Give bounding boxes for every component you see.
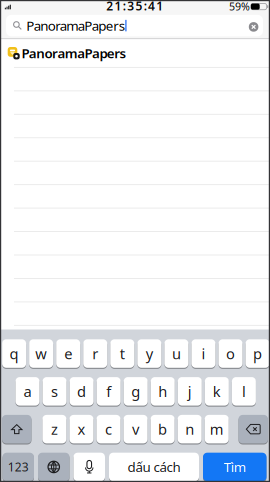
button[interactable]: Tìm [203,453,266,482]
button[interactable]: s [42,377,66,407]
staticText: b [158,419,167,439]
button[interactable]: a [15,377,39,407]
staticText: a [23,382,31,401]
staticText: 2 [106,0,113,14]
staticText: z [51,419,58,439]
staticText: n [185,419,194,439]
staticText: 4 [148,0,155,14]
staticText: p [253,344,262,363]
staticText: : [123,0,126,14]
staticText: t [120,344,125,363]
button[interactable]: f [97,377,121,407]
button[interactable]: b [151,415,175,444]
button[interactable]: h [151,377,175,407]
button[interactable]: 123 [2,453,34,482]
staticText: l [242,382,246,401]
button[interactable]: w [29,339,53,369]
button[interactable]: Clear text [249,22,258,32]
button[interactable]: e [56,339,80,369]
button[interactable]: Shift [2,415,31,444]
staticText: v [132,419,139,439]
staticText: 1 [156,0,163,14]
button[interactable]: u [164,339,188,369]
staticText: e [64,344,72,363]
staticText: o [226,344,235,363]
button[interactable]: i [191,339,215,369]
staticText: x [77,419,85,439]
staticText: g [131,382,140,401]
staticText: 5 [135,0,142,14]
staticText: PanoramaPapers [26,17,125,34]
staticText: c [105,419,112,439]
staticText: 123 [8,459,29,475]
button[interactable]: z [42,415,66,444]
staticText: i [201,344,205,363]
staticText: m [210,419,224,439]
button[interactable]: o [218,339,242,369]
button[interactable]: l [232,377,256,407]
button[interactable]: n [178,415,202,444]
button[interactable]: m [205,415,229,444]
button[interactable]: j [178,377,202,407]
button[interactable]: d [70,377,94,407]
button[interactable]: PanoramaPapers [0,39,270,67]
button[interactable]: PanoramaPapers [6,15,263,36]
staticText: d [77,382,86,401]
button[interactable]: t [110,339,134,369]
button[interactable]: Next keyboard [38,453,69,482]
button[interactable]: x [69,415,93,444]
staticText: 59% [229,0,250,13]
staticText: y [146,344,153,363]
button[interactable]: y [137,339,161,369]
staticText: : [144,0,147,14]
staticText: w [35,344,47,363]
staticText: s [51,382,58,401]
button[interactable]: q [2,339,26,369]
staticText: j [188,382,192,401]
button[interactable]: r [83,339,107,369]
staticText: 3 [127,0,134,14]
staticText: q [10,344,19,363]
staticText: r [92,344,98,363]
staticText: PanoramaPapers [21,44,127,62]
button[interactable]: Dictation [73,453,105,482]
staticText: h [158,382,167,401]
staticText: k [213,382,221,401]
button[interactable]: g [124,377,148,407]
button[interactable]: p [246,339,270,369]
button[interactable]: Delete [238,415,268,444]
button[interactable]: c [96,415,120,444]
button[interactable]: dấu cách [109,453,199,482]
staticText: 1 [115,0,122,14]
staticText: Tìm [224,458,246,476]
staticText: u [172,344,181,363]
button[interactable]: k [205,377,229,407]
button[interactable]: v [124,415,148,444]
staticText: dấu cách [127,458,180,476]
staticText: f [106,382,111,401]
